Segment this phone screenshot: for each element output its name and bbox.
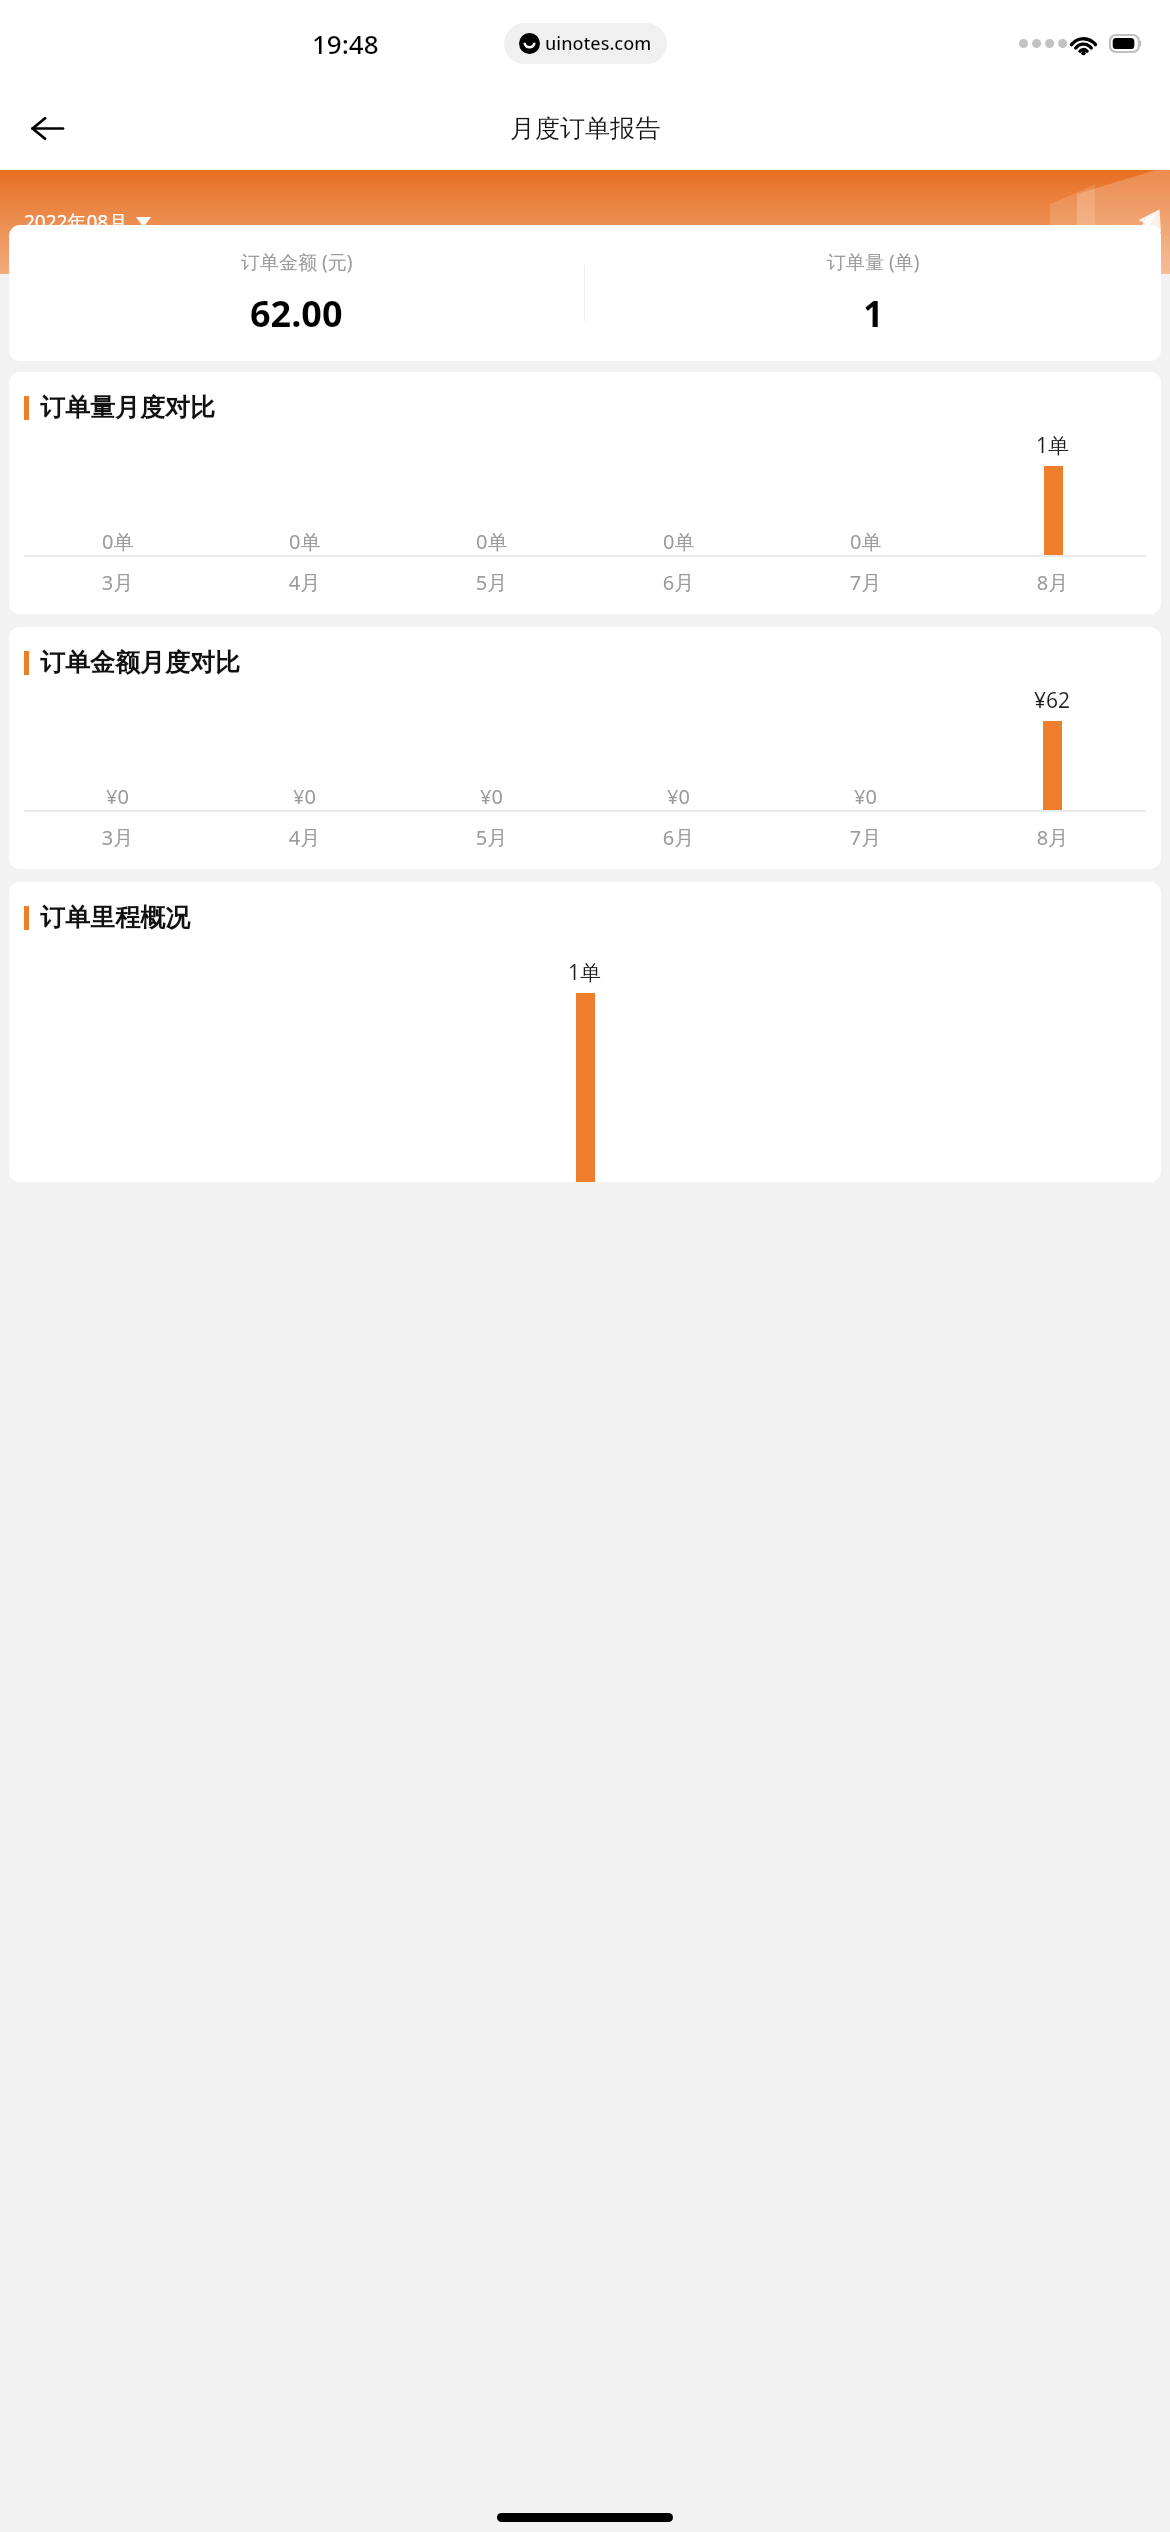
staticText: ¥0 bbox=[854, 783, 877, 810]
staticText: 订单量 (单) bbox=[827, 249, 920, 275]
button[interactable]: 订单量月度对比 bbox=[9, 372, 1161, 614]
staticText: 订单金额 (元) bbox=[241, 249, 353, 275]
staticText: ¥62 bbox=[1034, 686, 1071, 715]
staticText: ¥0 bbox=[480, 783, 503, 810]
staticText: 6月 bbox=[585, 569, 772, 596]
staticText: 4月 bbox=[211, 824, 398, 851]
staticText: 1单 bbox=[568, 958, 602, 987]
staticText: 1 bbox=[863, 289, 884, 338]
staticText: 订单里程概况 bbox=[40, 902, 190, 933]
staticText: 3月 bbox=[24, 569, 211, 596]
staticText: ¥0 bbox=[293, 783, 316, 810]
staticText: ¥0 bbox=[667, 783, 690, 810]
staticText: 2022年08月 bbox=[24, 209, 128, 235]
staticText: uinotes.com bbox=[545, 31, 652, 56]
staticText: 8月 bbox=[959, 569, 1146, 596]
staticText: 8月 bbox=[959, 824, 1146, 851]
button[interactable]: 2022年08月 bbox=[24, 209, 151, 235]
staticText: 5月 bbox=[398, 824, 585, 851]
staticText: 7月 bbox=[772, 824, 959, 851]
staticText: 0单 bbox=[102, 528, 134, 555]
staticText: 订单金额月度对比 bbox=[40, 647, 240, 678]
button[interactable]: Back bbox=[16, 97, 78, 159]
staticText: 0单 bbox=[850, 528, 882, 555]
staticText: 1单 bbox=[1036, 431, 1070, 460]
staticText: 5月 bbox=[398, 569, 585, 596]
staticText: 月度订单报告 bbox=[510, 113, 660, 144]
staticText: 0单 bbox=[289, 528, 321, 555]
staticText: 3月 bbox=[24, 824, 211, 851]
staticText: 6月 bbox=[585, 824, 772, 851]
staticText: 0单 bbox=[663, 528, 695, 555]
staticText: 7月 bbox=[772, 569, 959, 596]
staticText: 0单 bbox=[476, 528, 508, 555]
button[interactable]: 订单里程概况 bbox=[9, 882, 1161, 1182]
staticText: 4月 bbox=[211, 569, 398, 596]
button[interactable]: 订单金额 (元) bbox=[9, 225, 1161, 361]
staticText: 订单量月度对比 bbox=[40, 392, 215, 423]
staticText: ¥0 bbox=[106, 783, 129, 810]
button[interactable]: 订单金额月度对比 bbox=[9, 627, 1161, 869]
staticText: 62.00 bbox=[250, 289, 343, 338]
staticText: 19:48 bbox=[312, 26, 379, 61]
